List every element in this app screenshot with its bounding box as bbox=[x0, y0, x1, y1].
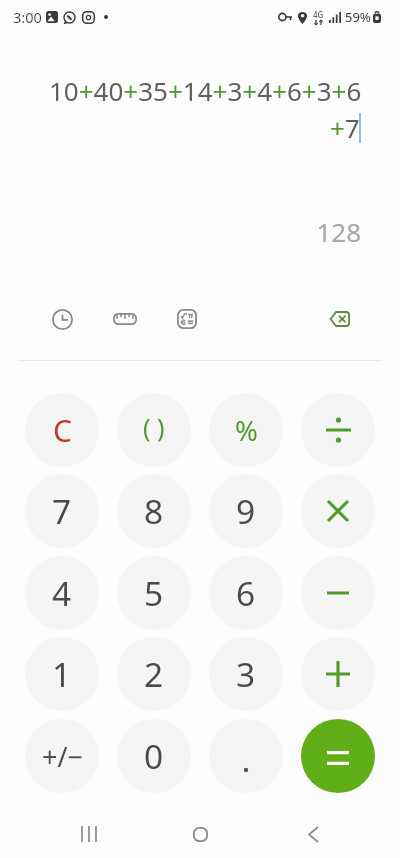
button[interactable]: History bbox=[40, 297, 84, 341]
staticText: 5 bbox=[144, 570, 164, 616]
button[interactable]: Scientific calculator bbox=[165, 297, 209, 341]
button[interactable]: Unit converter bbox=[103, 297, 147, 341]
button[interactable]: Home bbox=[178, 812, 222, 856]
button[interactable]: Recents bbox=[67, 812, 111, 856]
staticText: 3:00 bbox=[13, 7, 42, 27]
staticText: 9 bbox=[236, 488, 256, 534]
button[interactable]: 1 bbox=[25, 637, 99, 711]
button[interactable]: +/− bbox=[25, 719, 99, 793]
staticText: 59% bbox=[345, 8, 371, 26]
staticText: C bbox=[53, 410, 72, 451]
staticText: 8 bbox=[144, 488, 164, 534]
button[interactable]: ( ) bbox=[117, 393, 191, 467]
button[interactable]: Multiply bbox=[301, 474, 375, 548]
button[interactable]: 0 bbox=[117, 719, 191, 793]
button[interactable]: 6 bbox=[209, 556, 283, 630]
button[interactable]: % bbox=[209, 393, 283, 467]
staticText: 4 bbox=[52, 570, 72, 616]
button[interactable]: Decimal point bbox=[209, 719, 283, 793]
staticText: +/− bbox=[42, 738, 83, 775]
staticText: ( ) bbox=[143, 410, 165, 444]
staticText: 128 bbox=[0, 214, 361, 249]
button[interactable]: 9 bbox=[209, 474, 283, 548]
button[interactable]: Backspace bbox=[317, 297, 361, 341]
staticText: 0 bbox=[144, 733, 164, 779]
staticText: 3 bbox=[236, 651, 256, 697]
staticText: 4G bbox=[313, 9, 324, 20]
button[interactable]: 8 bbox=[117, 474, 191, 548]
button[interactable]: Subtract bbox=[301, 556, 375, 630]
staticText: 7 bbox=[52, 488, 72, 534]
staticText: 2 bbox=[144, 651, 164, 697]
staticText: +7 bbox=[330, 110, 360, 145]
button[interactable]: C bbox=[25, 393, 99, 467]
button[interactable]: 4 bbox=[25, 556, 99, 630]
button[interactable]: Back bbox=[291, 812, 335, 856]
button[interactable]: 5 bbox=[117, 556, 191, 630]
button[interactable]: 7 bbox=[25, 474, 99, 548]
button[interactable]: Equals bbox=[301, 719, 375, 793]
button[interactable]: Add bbox=[301, 637, 375, 711]
staticText: % bbox=[235, 412, 258, 449]
button[interactable]: 2 bbox=[117, 637, 191, 711]
staticText: 6 bbox=[236, 570, 256, 616]
staticText: 10+40+35+14+3+4+6+3+6 bbox=[49, 73, 362, 108]
button[interactable]: 3 bbox=[209, 637, 283, 711]
button[interactable]: Divide bbox=[301, 393, 375, 467]
staticText: 1 bbox=[52, 651, 72, 697]
